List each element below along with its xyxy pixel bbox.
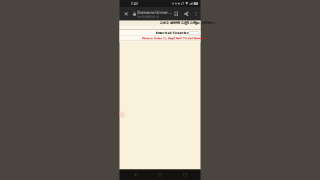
staticText: Enter Hall Ticket No. : xyxy=(155,31,191,35)
staticText: bieboards.co.in xyxy=(137,15,159,19)
button[interactable]: Home xyxy=(151,169,168,180)
staticText: 68 xyxy=(195,3,197,4)
button[interactable]: Recent apps xyxy=(176,169,193,180)
staticText: Domania Universi… xyxy=(137,9,171,15)
button[interactable]: Back xyxy=(126,169,143,180)
staticText: పదవ తరగతి పబ్లిక్ పరీక్షల ఫలితాలు xyxy=(160,21,215,25)
staticText: 7:43 xyxy=(130,1,137,6)
button[interactable]: Close tab xyxy=(119,7,133,21)
button[interactable]: More options xyxy=(191,7,200,21)
staticText: Please Enter 11 Digit Hall Ticket Number xyxy=(142,37,206,40)
button[interactable]: Bookmark xyxy=(171,7,181,21)
button[interactable]: Share xyxy=(181,7,191,21)
